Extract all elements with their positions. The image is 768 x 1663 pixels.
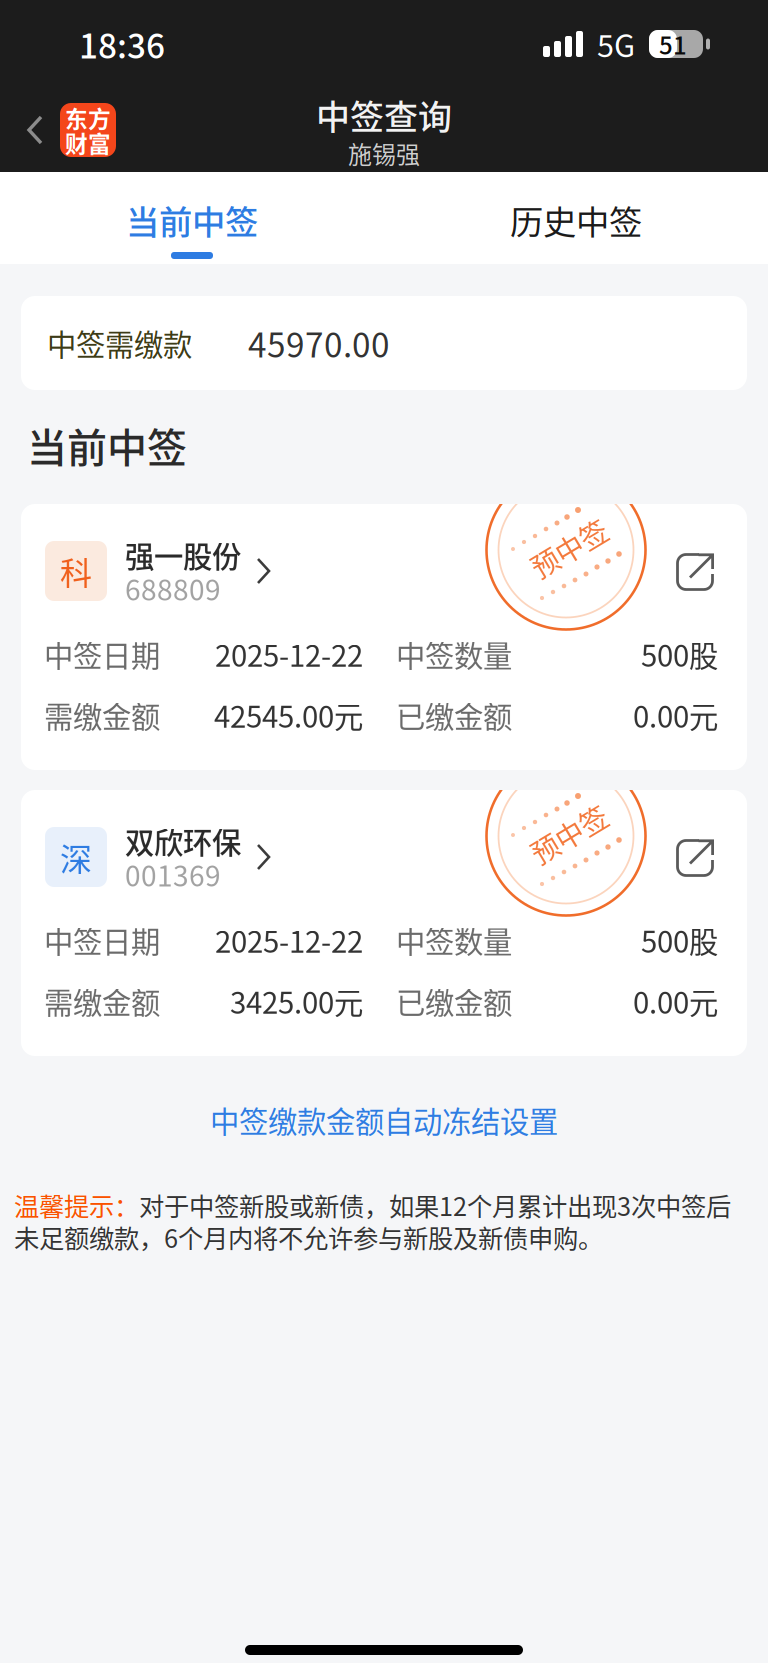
staticText: 强一股份 [125,533,241,576]
staticText: 42545.00元 [214,694,363,736]
staticText: 500股 [641,919,718,961]
staticText: 当前中签 [27,416,187,474]
staticText: 历史中签 [510,196,642,244]
staticText: 科 [60,548,92,594]
staticText: 深 [60,834,92,880]
staticText: 18:36 [79,20,165,68]
staticText: 中签日期 [44,919,160,961]
staticText: 中签需缴款 [47,322,192,364]
button[interactable]: 预中签 [21,790,747,1056]
staticText: 中签数量 [396,633,512,675]
staticText: 2025-12-22 [215,919,363,961]
staticText: 5G [597,22,635,66]
button[interactable]: 历史中签 [384,172,768,264]
staticText: 温馨提示： [14,1187,139,1223]
button[interactable]: 预中签 [21,504,747,770]
staticText: 中签日期 [44,633,160,675]
staticText: 中签查询 [316,90,452,140]
staticText: 已缴金额 [396,694,512,736]
staticText: 45970.00 [248,319,390,367]
button[interactable]: Open in browser [663,826,727,890]
staticText: 0.00元 [633,694,718,736]
button[interactable]: 当前中签 [0,172,384,264]
staticText: 需缴金额 [44,980,160,1022]
staticText: 施锡强 [348,136,420,170]
staticText: 001369 [125,854,221,894]
staticText: 当前中签 [126,196,258,244]
staticText: 预中签 [527,814,611,854]
staticText: 双欣环保 [125,819,241,862]
staticText: 财富 [65,126,111,159]
button[interactable]: Back [0,88,128,172]
staticText: 3425.00元 [230,980,363,1022]
staticText: 688809 [125,568,221,608]
staticText: 已缴金额 [396,980,512,1022]
staticText: 500股 [641,633,718,675]
staticText: 预中签 [527,528,611,568]
staticText: 中签缴款金额自动冻结设置 [210,1099,558,1141]
staticText: 0.00元 [633,980,718,1022]
staticText: 需缴金额 [44,694,160,736]
button[interactable]: 中签缴款金额自动冻结设置 [0,1056,768,1184]
staticText: 未足额缴款，6个月内将不允许参与新股及新债申购。 [14,1219,603,1255]
staticText: 51 [659,27,687,61]
staticText: 中签数量 [396,919,512,961]
staticText: 东方 [65,101,111,134]
button[interactable]: Open in browser [663,540,727,604]
staticText: 对于中签新股或新债，如果12个月累计出现3次中签后 [139,1187,731,1223]
staticText: 2025-12-22 [215,633,363,675]
